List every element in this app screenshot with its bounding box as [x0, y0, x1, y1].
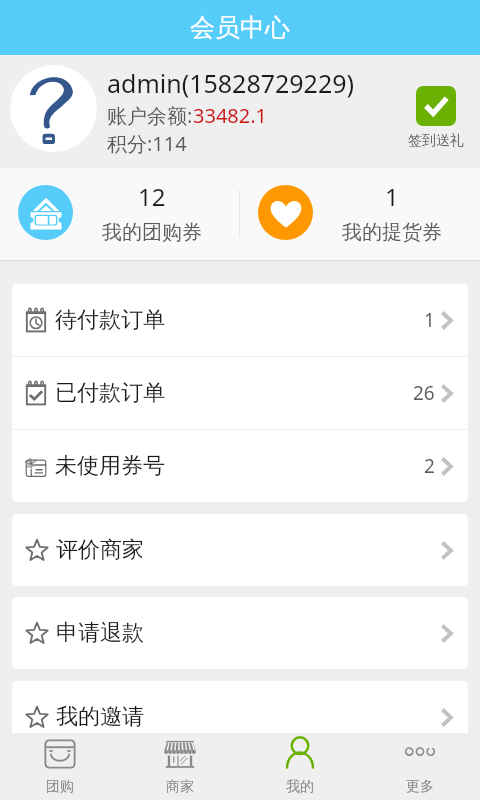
staticText: 商家 [166, 778, 194, 796]
staticText: 33482.1 [193, 102, 267, 129]
staticText: 我的团购券 [102, 220, 202, 245]
button[interactable]: 未使用券号 [12, 430, 468, 502]
staticText: 更多 [406, 778, 434, 796]
staticText: 评价商家 [56, 536, 144, 564]
button[interactable]: 签到送礼 [400, 82, 472, 154]
button[interactable]: 已付款订单 [12, 357, 468, 429]
button[interactable]: 更多 [360, 737, 480, 796]
button[interactable]: 评价商家 [12, 514, 468, 586]
staticText: 账户余额: [107, 102, 193, 129]
staticText: 会员中心 [190, 12, 290, 43]
button[interactable]: 1 [240, 182, 480, 247]
staticText: 26 [413, 380, 435, 406]
staticText: 签到送礼 [408, 132, 464, 150]
staticText: 1 [385, 180, 399, 213]
button[interactable]: 我的 [240, 737, 360, 796]
button[interactable]: 我的邀请 [12, 681, 468, 753]
button[interactable]: 12 [0, 182, 239, 247]
staticText: 我的 [286, 778, 314, 796]
button[interactable]: 团购 [0, 737, 120, 796]
staticText: 我的邀请 [56, 703, 144, 731]
staticText: 团购 [46, 778, 74, 796]
staticText: 未使用券号 [55, 452, 165, 480]
staticText: 待付款订单 [55, 306, 165, 334]
staticText: 已付款订单 [55, 379, 165, 407]
staticText: 申请退款 [56, 619, 144, 647]
button[interactable]: 申请退款 [12, 597, 468, 669]
staticText: 我的提货券 [342, 220, 442, 245]
button[interactable]: 待付款订单 [12, 284, 468, 356]
button[interactable]: 商家 [120, 737, 240, 796]
staticText: 积分:114 [107, 130, 187, 157]
staticText: 2 [424, 453, 435, 479]
staticText: admin(15828729229) [107, 66, 354, 100]
staticText: 12 [138, 180, 166, 213]
staticText: 1 [424, 307, 435, 333]
